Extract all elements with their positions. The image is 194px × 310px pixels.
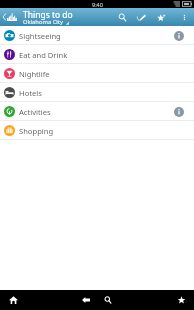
button[interactable]: Eat and Drink bbox=[0, 45, 194, 64]
staticText: Things to do bbox=[23, 9, 73, 21]
button[interactable]: Nightlife bbox=[0, 64, 194, 83]
button[interactable]: Information bbox=[170, 103, 187, 120]
button[interactable]: Search bbox=[100, 290, 116, 310]
button[interactable]: Edit route bbox=[132, 8, 151, 26]
staticText: 9:40 bbox=[92, 1, 103, 8]
button[interactable]: Sightseeing bbox=[0, 26, 194, 45]
staticText: Oklahoma City bbox=[23, 18, 63, 26]
staticText: Shopping bbox=[19, 126, 54, 136]
button[interactable]: Add to favorites bbox=[152, 8, 171, 26]
staticText: Eat and Drink bbox=[19, 50, 68, 60]
button[interactable]: Favorites bbox=[173, 290, 189, 310]
button[interactable]: Navigate up bbox=[0, 8, 21, 26]
staticText: Sightseeing bbox=[19, 31, 61, 41]
button[interactable]: Back bbox=[78, 290, 94, 310]
staticText: Activities bbox=[19, 107, 51, 117]
staticText: Hotels bbox=[19, 88, 42, 98]
staticText: Nightlife bbox=[19, 69, 50, 79]
button[interactable]: Search bbox=[113, 8, 132, 26]
button[interactable]: Home bbox=[5, 290, 21, 310]
button[interactable]: Hotels bbox=[0, 83, 194, 102]
button[interactable]: Shopping bbox=[0, 121, 194, 140]
button[interactable]: More options bbox=[175, 8, 194, 26]
button[interactable]: Activities bbox=[0, 102, 194, 121]
button[interactable]: Information bbox=[170, 27, 187, 44]
